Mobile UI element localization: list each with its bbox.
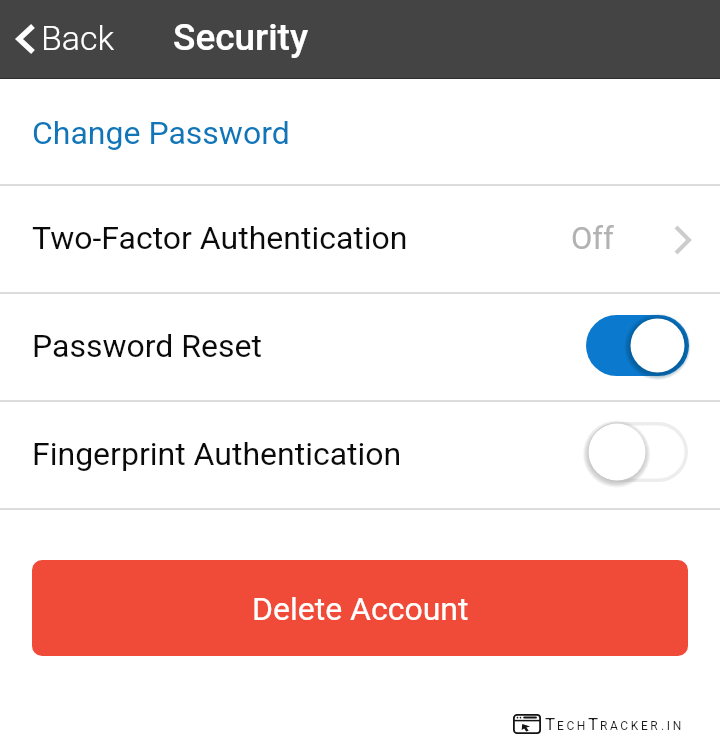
staticText: Password Reset <box>32 327 262 365</box>
button[interactable]: Two-Factor Authentication <box>0 186 720 292</box>
button[interactable]: Fingerprint Authentication <box>0 402 720 508</box>
button[interactable]: Change Password <box>0 79 720 184</box>
staticText: ECH <box>557 719 588 733</box>
button[interactable]: Fingerprint Authentication toggle, off <box>588 419 688 485</box>
staticText: Delete Account <box>252 590 469 628</box>
button[interactable]: Delete Account <box>32 560 688 656</box>
staticText: .IN <box>661 719 684 733</box>
button[interactable]: Password Reset <box>0 294 720 400</box>
staticText: Change Password <box>32 114 290 152</box>
staticText: Fingerprint Authentication <box>32 435 402 473</box>
button[interactable]: Password Reset toggle, on <box>586 312 689 378</box>
staticText: RACKER <box>600 719 661 733</box>
staticText: Two-Factor Authentication <box>32 219 408 257</box>
staticText: Back <box>41 18 115 58</box>
staticText: Off <box>571 220 614 256</box>
button[interactable]: Back <box>0 0 127 79</box>
staticText: T <box>588 714 600 734</box>
staticText: T <box>545 714 557 734</box>
staticText: Security <box>173 16 309 59</box>
